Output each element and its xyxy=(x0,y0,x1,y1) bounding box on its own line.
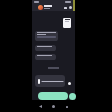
button[interactable]: Video call xyxy=(64,6,67,9)
other: Play voice message xyxy=(38,79,40,84)
button[interactable]: Back xyxy=(36,102,45,111)
button[interactable]: Home xyxy=(49,102,58,111)
button[interactable]: Send xyxy=(69,93,76,100)
button[interactable] xyxy=(63,18,71,28)
button[interactable] xyxy=(35,45,56,51)
button[interactable]: Contact avatar xyxy=(38,5,43,10)
button[interactable] xyxy=(38,92,68,100)
button[interactable]: Voice call xyxy=(69,6,72,9)
button[interactable]: Recents xyxy=(62,102,71,111)
button[interactable] xyxy=(35,54,56,60)
button[interactable] xyxy=(35,31,58,41)
button[interactable]: Play voice message xyxy=(35,75,65,87)
